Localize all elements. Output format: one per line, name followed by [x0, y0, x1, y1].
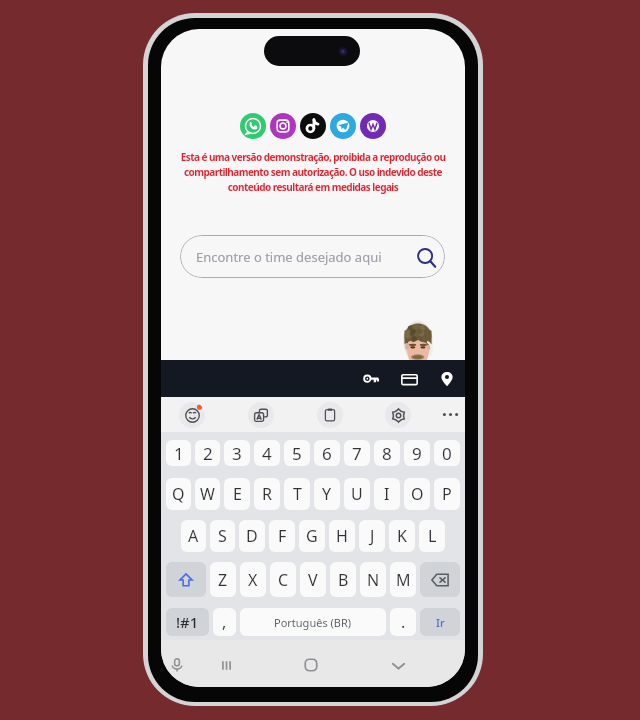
- staticText: 8: [382, 442, 392, 465]
- staticText: T: [293, 483, 302, 505]
- button[interactable]: L: [419, 520, 445, 552]
- staticText: L: [428, 525, 437, 547]
- button[interactable]: Recent apps: [210, 649, 242, 681]
- staticText: O: [411, 483, 424, 505]
- staticText: H: [336, 525, 348, 547]
- button[interactable]: E: [224, 478, 250, 510]
- button[interactable]: V: [300, 562, 326, 597]
- button[interactable]: A: [181, 520, 206, 552]
- button[interactable]: 6: [314, 440, 340, 466]
- staticText: I: [384, 483, 390, 505]
- button[interactable]: C: [270, 562, 296, 597]
- button[interactable]: 4: [254, 440, 280, 466]
- staticText: A: [188, 525, 199, 547]
- staticText: C: [278, 569, 289, 591]
- staticText: D: [246, 525, 258, 547]
- staticText: G: [306, 525, 318, 547]
- staticText: M: [396, 569, 411, 591]
- staticText: 4: [262, 442, 272, 465]
- staticText: 2: [203, 442, 213, 465]
- staticText: 9: [412, 442, 422, 465]
- button[interactable]: B: [330, 562, 356, 597]
- button[interactable]: !#1: [166, 608, 209, 636]
- button[interactable]: Backspace: [420, 562, 460, 597]
- button[interactable]: Addresses: [432, 364, 462, 394]
- staticText: Q: [172, 483, 185, 505]
- staticText: N: [367, 569, 380, 591]
- staticText: ,: [222, 611, 227, 633]
- button[interactable]: R: [254, 478, 280, 510]
- button[interactable]: Instagram: [270, 113, 296, 139]
- button[interactable]: WhatsApp: [240, 113, 266, 139]
- button[interactable]: Q: [166, 478, 191, 510]
- staticText: .: [401, 611, 406, 633]
- staticText: W: [200, 483, 215, 505]
- button[interactable]: More options: [437, 401, 464, 428]
- staticText: Esta é uma versão demonstração, proibida…: [175, 150, 451, 194]
- button[interactable]: Português (BR): [240, 608, 386, 636]
- button[interactable]: Passwords: [356, 364, 386, 394]
- button[interactable]: M: [390, 562, 416, 597]
- button[interactable]: Home: [295, 649, 327, 681]
- staticText: 7: [352, 442, 362, 465]
- button[interactable]: 1: [166, 440, 191, 466]
- button[interactable]: K: [389, 520, 415, 552]
- button[interactable]: F: [269, 520, 295, 552]
- staticText: K: [397, 525, 407, 547]
- staticText: 3: [232, 442, 242, 465]
- button[interactable]: Y: [314, 478, 340, 510]
- staticText: 5: [292, 442, 302, 465]
- button[interactable]: W: [195, 478, 220, 510]
- staticText: 0: [442, 442, 452, 465]
- button[interactable]: 9: [404, 440, 430, 466]
- staticText: !#1: [176, 612, 199, 632]
- staticText: Z: [218, 569, 228, 591]
- button[interactable]: O: [404, 478, 430, 510]
- button[interactable]: TikTok: [300, 113, 326, 139]
- button[interactable]: 2: [195, 440, 220, 466]
- staticText: 6: [322, 442, 332, 465]
- staticText: R: [262, 483, 272, 505]
- button[interactable]: .: [390, 608, 416, 636]
- button[interactable]: Translate: [248, 402, 274, 428]
- staticText: J: [370, 525, 375, 547]
- button[interactable]: N: [360, 562, 386, 597]
- button[interactable]: P: [434, 478, 460, 510]
- button[interactable]: I: [374, 478, 400, 510]
- button[interactable]: Voice input: [162, 650, 192, 680]
- button[interactable]: ,: [213, 608, 236, 636]
- button[interactable]: Payment cards: [394, 364, 424, 394]
- staticText: E: [233, 483, 242, 505]
- button[interactable]: Emoji: [179, 402, 205, 428]
- button[interactable]: T: [284, 478, 310, 510]
- staticText: Y: [322, 483, 332, 505]
- button[interactable]: U: [344, 478, 370, 510]
- button[interactable]: X: [240, 562, 266, 597]
- button[interactable]: Clipboard: [317, 402, 343, 428]
- button[interactable]: Back: [382, 649, 414, 681]
- button[interactable]: Ir: [420, 608, 460, 636]
- button[interactable]: Telegram: [330, 113, 356, 139]
- button[interactable]: D: [239, 520, 265, 552]
- button[interactable]: 0: [434, 440, 460, 466]
- staticText: V: [308, 569, 318, 591]
- button[interactable]: Z: [210, 562, 236, 597]
- staticText: B: [338, 569, 349, 591]
- button[interactable]: Shift: [166, 562, 206, 597]
- button[interactable]: H: [329, 520, 355, 552]
- button[interactable]: Keyboard settings: [385, 402, 411, 428]
- button[interactable]: 8: [374, 440, 400, 466]
- staticText: F: [278, 525, 287, 547]
- button[interactable]: WordPress: [360, 113, 386, 139]
- button[interactable]: S: [210, 520, 235, 552]
- button[interactable]: Encontre o time desejado aqui: [180, 235, 445, 278]
- button[interactable]: 5: [284, 440, 310, 466]
- staticText: X: [248, 569, 258, 591]
- staticText: U: [351, 483, 363, 505]
- button[interactable]: 3: [224, 440, 250, 466]
- button[interactable]: J: [359, 520, 385, 552]
- staticText: Encontre o time desejado aqui: [196, 248, 382, 266]
- button[interactable]: G: [299, 520, 325, 552]
- button[interactable]: 7: [344, 440, 370, 466]
- staticText: Português (BR): [274, 615, 352, 630]
